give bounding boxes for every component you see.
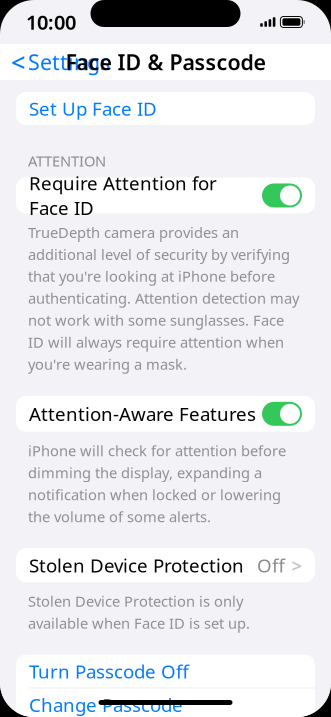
button[interactable]: Stolen Device Protection	[16, 548, 315, 582]
staticText: Set Up Face ID	[29, 96, 157, 121]
staticText: Require Attention for Face ID	[29, 171, 217, 220]
staticText: Settings	[28, 48, 110, 76]
button[interactable]: Turn Passcode Off	[16, 655, 315, 688]
staticText: Stolen Device Protection is only availab…	[28, 591, 250, 633]
button[interactable]: Set Up Face ID	[16, 92, 315, 125]
button[interactable]: Change Passcode	[16, 688, 315, 717]
staticText: <	[11, 45, 25, 79]
staticText: iPhone will check for attention before d…	[28, 441, 286, 526]
button[interactable]: Attention-Aware Features	[16, 396, 315, 432]
staticText: Turn Passcode Off	[29, 659, 189, 684]
staticText: Off	[257, 553, 285, 578]
staticText: TrueDepth camera provides an additional …	[28, 222, 299, 374]
staticText: Stolen Device Protection	[29, 553, 244, 578]
staticText: Face ID & Passcode	[65, 48, 265, 76]
staticText: ATTENTION	[28, 151, 106, 170]
staticText: 10:00	[26, 9, 76, 35]
staticText: >	[291, 553, 302, 578]
staticText: Attention-Aware Features	[29, 401, 256, 426]
button[interactable]: Require Attention for Face ID	[16, 177, 315, 213]
button[interactable]: <	[0, 39, 110, 85]
staticText: Change Passcode	[29, 692, 183, 717]
